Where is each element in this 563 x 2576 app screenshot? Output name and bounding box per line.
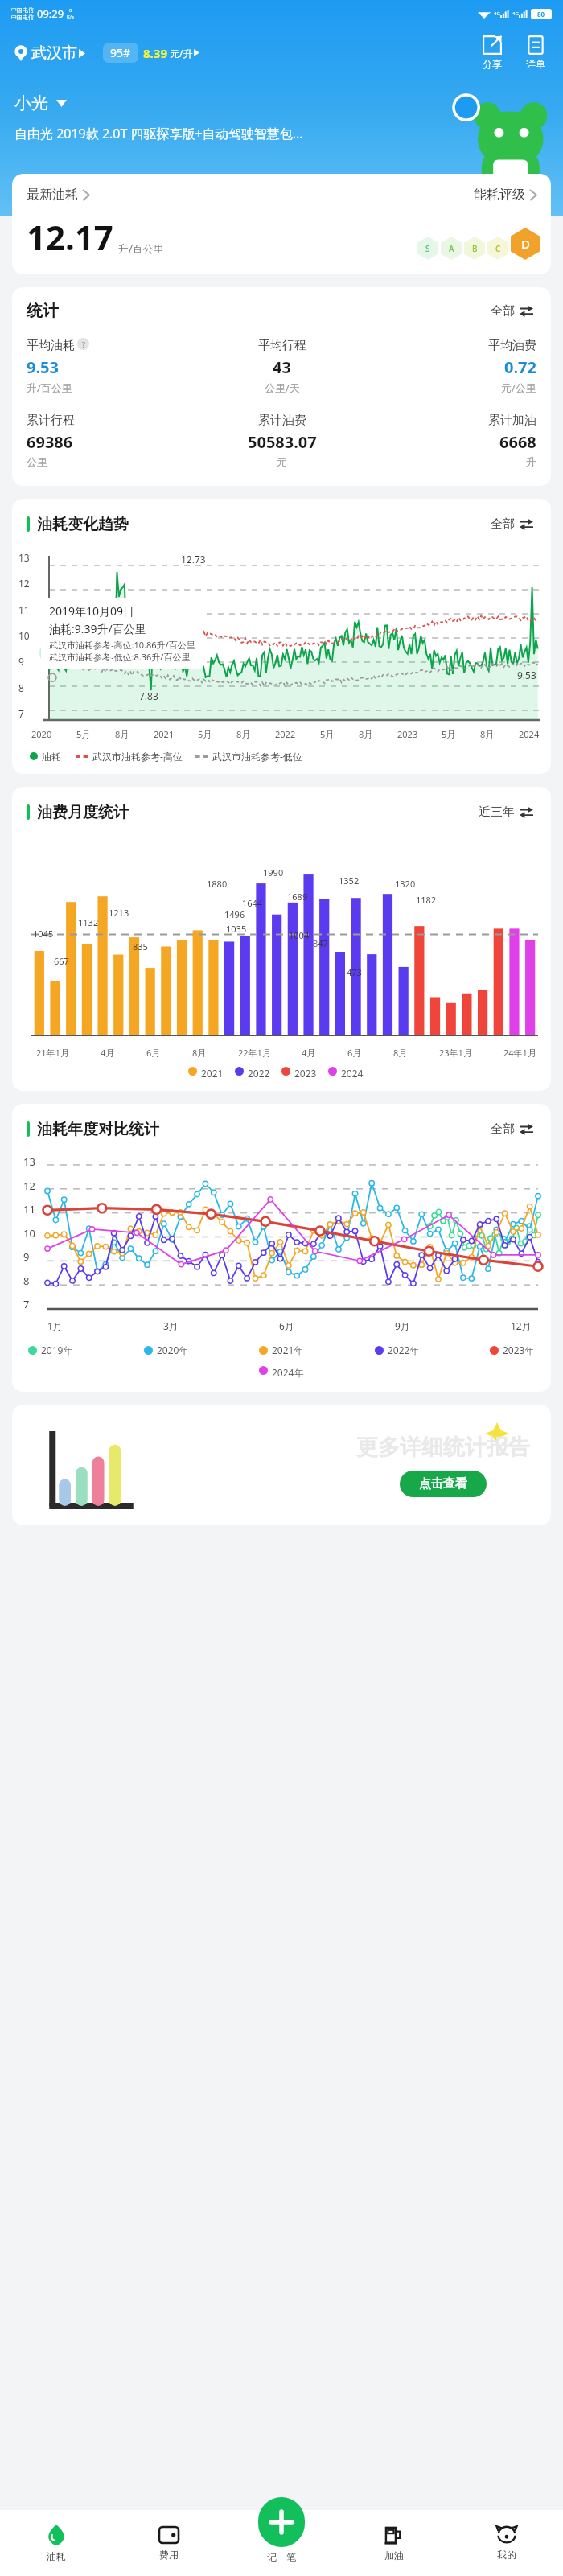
staticText: 11 (23, 1202, 35, 1216)
button[interactable]: 油耗 (0, 2520, 113, 2567)
staticText: 2021 (154, 728, 175, 740)
staticText: 元/升 (167, 47, 193, 60)
staticText: 4月 (302, 1047, 316, 1059)
button[interactable]: 更多详细统计报告 (12, 1405, 551, 1525)
staticText: 2021 (201, 1067, 224, 1080)
staticText: D (521, 236, 530, 252)
staticText: 667 (54, 955, 69, 967)
staticText: 8月 (236, 728, 251, 740)
button[interactable]: 累计油费 (197, 413, 367, 468)
button[interactable]: 平均油耗 (27, 338, 197, 395)
staticText: 油耗 (42, 751, 61, 763)
button[interactable]: 全部 (487, 1118, 536, 1140)
button[interactable]: 分享 (479, 32, 505, 73)
staticText: 1035 (226, 923, 247, 935)
staticText: 1880 (207, 878, 228, 890)
button[interactable]: 近三年 (475, 801, 536, 823)
staticText: 元 (277, 455, 287, 468)
staticText: 油耗年度对比统计 (37, 1120, 159, 1139)
staticText: 升/百公里 (118, 241, 164, 256)
button[interactable]: 累计行程 (27, 413, 197, 468)
staticText: 12月 (511, 1319, 532, 1332)
staticText: 1644 (242, 897, 263, 909)
button[interactable]: 全部 (487, 300, 536, 322)
staticText: 12.73 (181, 553, 206, 566)
staticText: 95# (110, 45, 131, 60)
staticText: 分享 (483, 58, 502, 70)
staticText: 09:29 (37, 6, 64, 21)
button[interactable]: 累计加油 (367, 413, 536, 468)
button[interactable]: 最新油耗 (27, 187, 89, 203)
button[interactable]: 我的 (450, 2520, 563, 2566)
staticText: 21年1月 (36, 1047, 69, 1059)
staticText: 6668 (499, 431, 536, 453)
staticText: 9.53 (517, 669, 536, 681)
staticText: 7 (18, 707, 24, 720)
staticText: 小光 (14, 93, 48, 113)
button[interactable]: 详单 (523, 32, 549, 73)
button[interactable]: 能耗评级 (474, 187, 536, 203)
staticText: 1182 (416, 894, 437, 906)
staticText: 12 (18, 577, 30, 590)
staticText: 847 (313, 937, 328, 949)
staticText: 10 (18, 629, 30, 642)
staticText: 武汉市油耗参考-低位:8.36升/百公里 (49, 651, 191, 663)
staticText: 7.83 (139, 689, 158, 702)
staticText: 12.17 (27, 214, 113, 260)
staticText: 12 (23, 1179, 35, 1193)
staticText: 3月 (163, 1319, 179, 1332)
staticText: 2024年 (272, 1366, 304, 1379)
staticText: 全部 (491, 1121, 515, 1137)
staticText: 0.72 (504, 356, 536, 378)
staticText: 油耗变化趋势 (37, 515, 129, 534)
staticText: 2023年 (503, 1344, 535, 1356)
staticText: 13 (18, 551, 30, 564)
staticText: 2020年 (157, 1344, 189, 1356)
staticText: 最新油耗 (27, 187, 78, 203)
staticText: 5月 (442, 728, 456, 740)
staticText: 8 (23, 1274, 30, 1288)
button[interactable]: 点击查看 (400, 1471, 487, 1497)
button[interactable]: 武汉市 (14, 39, 85, 68)
staticText: 中国电信 (11, 6, 34, 14)
staticText: 1045 (33, 928, 54, 940)
button[interactable]: 平均行程 (197, 338, 367, 395)
staticText: 平均油耗 (27, 338, 75, 353)
staticText: 费用 (159, 2549, 179, 2561)
staticText: 2023 (397, 728, 418, 740)
staticText: 油费月度统计 (37, 803, 129, 822)
staticText: 中国电信 (11, 14, 34, 21)
staticText: 6月 (347, 1047, 362, 1059)
staticText: 2019年 (41, 1344, 73, 1356)
staticText: 8月 (115, 728, 129, 740)
button[interactable]: 费用 (113, 2521, 225, 2566)
button[interactable]: 平均油费 (367, 338, 536, 395)
staticText: 油耗 (47, 2550, 66, 2562)
staticText: 4月 (101, 1047, 115, 1059)
staticText: ? (82, 339, 85, 349)
button[interactable]: 记一笔 (258, 2497, 305, 2547)
staticText: 6月 (146, 1047, 161, 1059)
staticText: 9.53 (27, 356, 59, 378)
staticText: 13 (23, 1154, 35, 1169)
staticText: 2024 (519, 728, 540, 740)
button[interactable]: 加油 (338, 2520, 450, 2566)
staticText: 8月 (393, 1047, 408, 1059)
staticText: 8 (18, 681, 24, 694)
staticText: 0 (69, 7, 72, 14)
staticText: 统计 (27, 301, 59, 321)
staticText: 1320 (395, 878, 416, 890)
button[interactable]: 95# (103, 43, 199, 63)
staticText: 8月 (480, 728, 495, 740)
button[interactable]: 全部 (487, 513, 536, 535)
staticText: 6月 (279, 1319, 294, 1332)
button[interactable]: 小光 (14, 93, 67, 113)
staticText: 公里/天 (265, 381, 300, 395)
staticText: 2022年 (388, 1344, 420, 1356)
staticText: 能耗评级 (474, 187, 525, 203)
staticText: 公里 (27, 455, 47, 468)
staticText: 全部 (491, 303, 515, 319)
staticText: 1990 (263, 866, 284, 879)
staticText: 1352 (339, 874, 360, 887)
staticText: 详单 (526, 58, 545, 70)
